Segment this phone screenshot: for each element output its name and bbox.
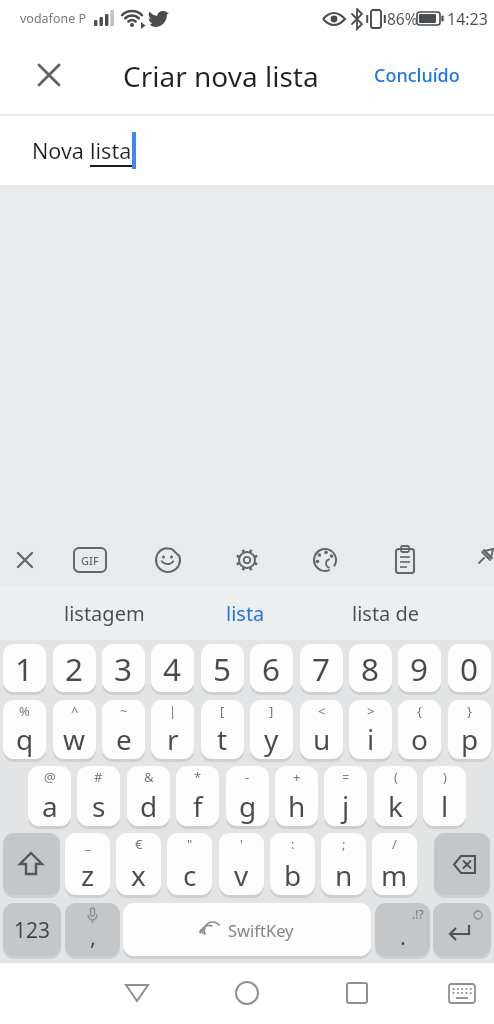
button[interactable]: @ — [28, 766, 71, 827]
button[interactable]: ( — [374, 766, 417, 827]
staticText: b — [284, 856, 302, 894]
button[interactable]: GIF — [70, 540, 110, 580]
button[interactable] — [305, 540, 345, 580]
button[interactable] — [438, 969, 486, 1017]
button[interactable]: 9 — [398, 644, 441, 693]
staticText: lista — [226, 600, 265, 627]
staticText: n — [335, 856, 353, 894]
button[interactable]: [ — [201, 700, 244, 760]
staticText: 1 — [15, 647, 34, 690]
button[interactable]: 7 — [300, 644, 343, 693]
button[interactable]: 6 — [250, 644, 293, 693]
staticText: v — [234, 856, 249, 894]
button[interactable]: * — [176, 766, 219, 827]
staticText: { — [417, 702, 422, 720]
button[interactable]: 123 — [3, 903, 61, 957]
button[interactable]: > — [349, 700, 392, 760]
button[interactable]: ) — [423, 766, 466, 827]
button[interactable]: 5 — [201, 644, 244, 693]
button[interactable]: ; — [321, 833, 366, 896]
staticText: ' — [240, 835, 243, 853]
button[interactable]: | — [151, 700, 194, 760]
button[interactable] — [333, 969, 381, 1017]
staticText: * — [194, 768, 202, 786]
button[interactable]: 1 — [3, 644, 46, 693]
button[interactable]: " — [167, 833, 212, 896]
button[interactable]: lista — [175, 586, 315, 640]
staticText: € — [135, 835, 143, 853]
button[interactable]: % — [3, 700, 46, 760]
button[interactable]: - — [226, 766, 269, 827]
button[interactable]: 4 — [151, 644, 194, 693]
button[interactable]: # — [77, 766, 120, 827]
staticText: k — [388, 787, 403, 825]
button[interactable]: / — [372, 833, 417, 896]
button[interactable] — [25, 51, 73, 99]
staticText: s — [92, 787, 106, 825]
button[interactable] — [470, 540, 494, 580]
button[interactable]: listagem — [34, 586, 174, 640]
staticText: 8 — [361, 647, 380, 690]
staticText: o — [411, 720, 428, 758]
staticText: 2 — [65, 647, 84, 690]
staticText: z — [81, 856, 95, 894]
button[interactable]: < — [300, 700, 343, 760]
button[interactable]: { — [398, 700, 441, 760]
button[interactable]: 2 — [53, 644, 96, 693]
staticText: 6 — [262, 647, 281, 690]
button[interactable]: Nova — [32, 116, 372, 185]
staticText: f — [193, 787, 203, 825]
button[interactable]: ] — [250, 700, 293, 760]
button[interactable]: ~ — [102, 700, 145, 760]
button[interactable]: 8 — [349, 644, 392, 693]
button[interactable]: .!? — [375, 903, 430, 957]
staticText: SwiftKey — [228, 919, 294, 941]
button[interactable]: & — [127, 766, 170, 827]
staticText: / — [392, 835, 397, 853]
button[interactable] — [434, 833, 490, 896]
staticText: < — [318, 702, 326, 720]
button[interactable]: } — [448, 700, 491, 760]
staticText: Nova — [32, 136, 90, 165]
button[interactable]: ^ — [53, 700, 96, 760]
button[interactable] — [5, 540, 45, 580]
staticText: e — [116, 720, 132, 758]
button[interactable]: , — [65, 903, 120, 957]
button[interactable] — [227, 540, 267, 580]
button[interactable] — [223, 969, 271, 1017]
button[interactable] — [385, 540, 425, 580]
staticText: 9 — [410, 647, 429, 690]
staticText: ; — [342, 835, 346, 853]
staticText: lista — [90, 136, 132, 165]
button[interactable] — [113, 969, 161, 1017]
button[interactable]: = — [324, 766, 367, 827]
staticText: , — [90, 921, 96, 951]
staticText: & — [144, 768, 154, 786]
button[interactable]: Concluído — [360, 37, 474, 114]
staticText: m — [381, 856, 408, 894]
staticText: p — [461, 720, 479, 758]
staticText: = — [342, 768, 350, 786]
button[interactable] — [433, 903, 491, 957]
button[interactable] — [3, 833, 60, 896]
button[interactable]: _ — [65, 833, 110, 896]
button[interactable]: 3 — [102, 644, 145, 693]
staticText: > — [367, 702, 375, 720]
staticText: ( — [394, 768, 398, 786]
button[interactable]: € — [116, 833, 161, 896]
staticText: 0 — [460, 647, 479, 690]
staticText: y — [264, 720, 279, 758]
button[interactable] — [148, 540, 188, 580]
button[interactable]: : — [270, 833, 315, 896]
staticText: ~ — [120, 702, 128, 720]
staticText: 4 — [163, 647, 182, 690]
staticText: c — [183, 856, 197, 894]
button[interactable]: + — [275, 766, 318, 827]
button[interactable]: SwiftKey — [123, 903, 371, 957]
button[interactable]: 0 — [448, 644, 491, 693]
staticText: l — [441, 787, 449, 825]
button[interactable]: lista de — [316, 586, 456, 640]
staticText: 3 — [114, 647, 133, 690]
staticText: q — [16, 720, 34, 758]
button[interactable]: ' — [219, 833, 264, 896]
